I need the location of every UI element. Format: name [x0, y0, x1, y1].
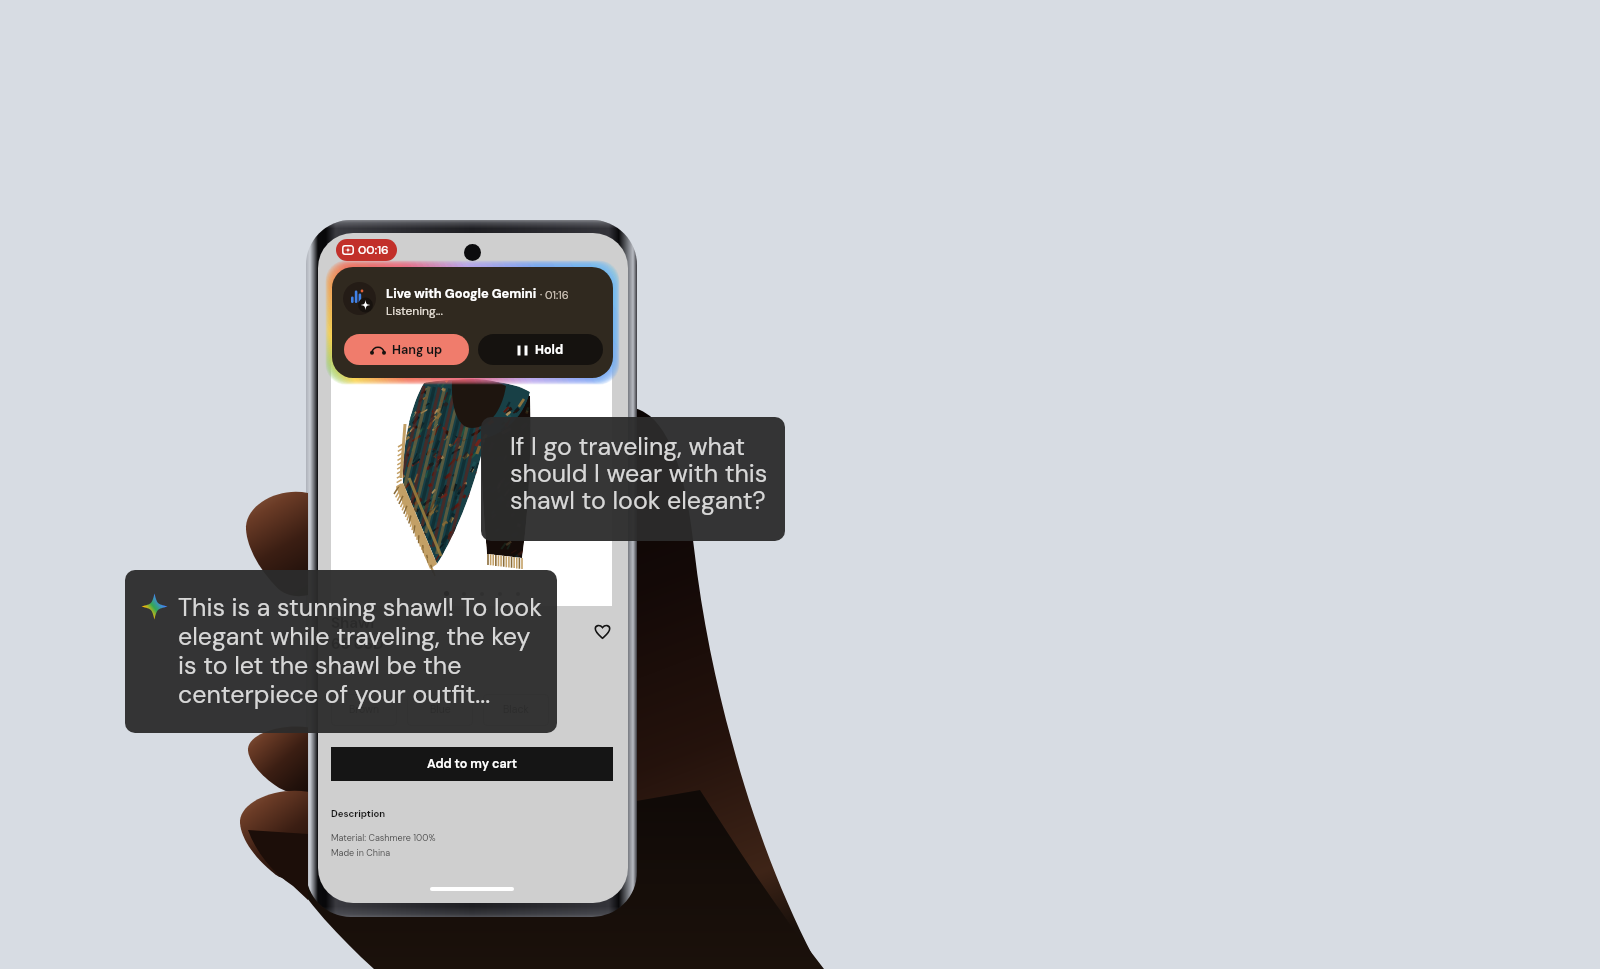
button[interactable]: Add to my cart: [331, 747, 613, 781]
staticText: Color: [331, 661, 351, 671]
button[interactable]: Hold: [478, 334, 603, 365]
button[interactable]: Brown: [331, 694, 397, 726]
staticText: Material: Cashmere 100%: [331, 832, 436, 844]
staticText: If I go traveling, what should I wear wi…: [510, 430, 768, 516]
staticText: Listening...: [386, 303, 443, 319]
button[interactable]: Screen recording 00:16: [336, 239, 397, 261]
staticText: · 01:16: [537, 288, 569, 302]
button[interactable]: Blue: [407, 694, 473, 726]
staticText: Brown: [349, 703, 380, 717]
button[interactable]: Hang up: [344, 334, 469, 365]
staticText: Shawl: [331, 613, 375, 633]
staticText: This is a stunning shawl! To look elegan…: [178, 591, 542, 710]
staticText: 66 USD: [331, 634, 384, 654]
staticText: 00:16: [358, 242, 389, 258]
staticText: Hang up: [392, 342, 443, 358]
button[interactable]: Add to favorites: [586, 615, 618, 647]
staticText: Made in China: [331, 847, 391, 859]
staticText: Hold: [535, 342, 564, 358]
staticText: Description: [331, 808, 386, 820]
button[interactable]: Black: [483, 694, 549, 726]
staticText: Live with Google Gemini: [386, 285, 537, 302]
staticText: Add to my cart: [427, 756, 517, 772]
